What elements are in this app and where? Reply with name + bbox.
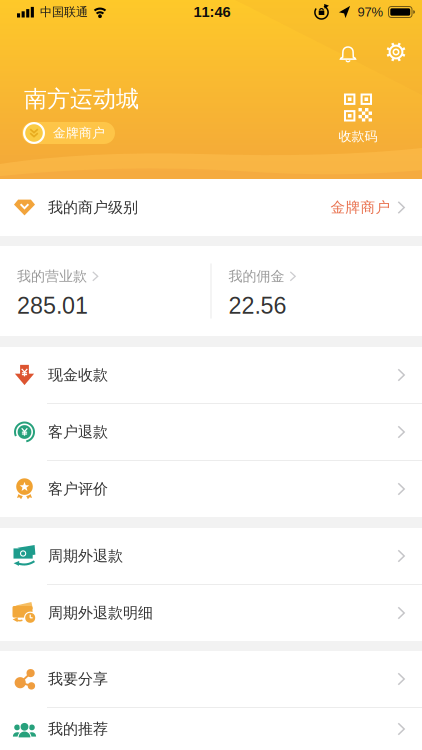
button[interactable]: 收款码: [338, 93, 377, 144]
button[interactable]: 现金收款: [0, 347, 422, 403]
staticText: 客户评价: [48, 480, 108, 498]
button[interactable]: 客户评价: [0, 461, 422, 517]
staticText: 285.01: [17, 293, 88, 318]
staticText: 我的商户级别: [48, 198, 138, 217]
button[interactable]: 我的营业款: [0, 266, 210, 316]
staticText: 金牌商户: [53, 125, 105, 141]
staticText: 22.56: [228, 293, 286, 318]
button[interactable]: 我的推荐: [0, 708, 422, 750]
staticText: 我的佣金: [228, 268, 284, 285]
button[interactable]: 通知: [338, 41, 358, 62]
staticText: 收款码: [338, 128, 377, 144]
button[interactable]: 客户退款: [0, 404, 422, 460]
staticText: 中国联通: [40, 5, 88, 19]
staticText: 我要分享: [48, 670, 108, 688]
button[interactable]: 周期外退款: [0, 528, 422, 584]
button[interactable]: 我的佣金: [211, 266, 422, 316]
staticText: 现金收款: [48, 366, 108, 384]
button[interactable]: 设置: [385, 41, 406, 62]
staticText: 客户退款: [48, 423, 108, 441]
button[interactable]: 我的商户级别: [0, 179, 422, 236]
staticText: 97%: [357, 5, 383, 19]
staticText: 周期外退款: [48, 547, 123, 565]
staticText: 我的推荐: [48, 720, 108, 738]
button[interactable]: 我要分享: [0, 651, 422, 707]
button[interactable]: 周期外退款明细: [0, 585, 422, 641]
staticText: 11:46: [193, 4, 230, 20]
staticText: 南方运动城: [24, 85, 139, 113]
staticText: 金牌商户: [330, 198, 390, 216]
staticText: 周期外退款明细: [48, 604, 153, 622]
staticText: 我的营业款: [17, 268, 87, 285]
